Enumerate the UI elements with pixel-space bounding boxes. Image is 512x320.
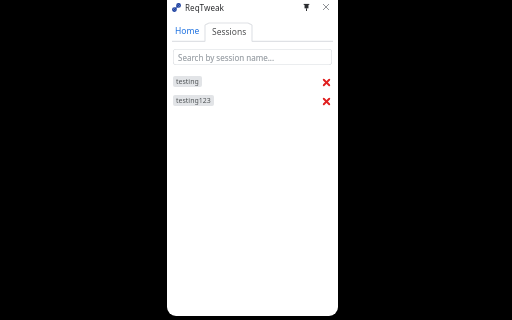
button[interactable]: Delete session testing — [320, 76, 332, 88]
staticText: Sessions — [212, 26, 247, 38]
staticText: testing — [176, 77, 199, 87]
button[interactable]: testing — [173, 76, 202, 87]
staticText: Home — [175, 25, 200, 37]
button[interactable]: testing123 — [173, 95, 214, 106]
button[interactable]: Delete session testing123 — [320, 95, 332, 107]
staticText: testing123 — [176, 96, 211, 106]
staticText: Search by session name... — [178, 52, 275, 63]
button[interactable]: Sessions — [212, 22, 247, 41]
button[interactable]: Home — [175, 22, 200, 40]
button[interactable]: Pin window — [299, 0, 313, 14]
button[interactable]: Search by session name... — [173, 49, 332, 65]
staticText: ReqTweak — [185, 2, 225, 13]
button[interactable]: Close — [319, 0, 333, 14]
